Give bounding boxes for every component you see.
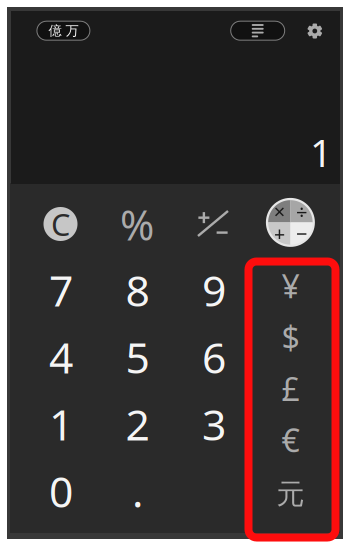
button[interactable]: £ [244,363,337,414]
staticText: ¥ [281,265,299,307]
button[interactable]: Clear [27,195,93,253]
button[interactable]: Operators [261,193,319,251]
staticText: 5 [125,329,149,385]
staticText: % [120,197,154,252]
staticText: 0 [49,463,73,519]
button[interactable]: 8 [99,256,176,323]
button[interactable]: € [244,414,337,465]
staticText: 1 [310,126,332,178]
staticText: ÷ [296,198,307,225]
staticText: × [274,198,285,225]
button[interactable]: 6 [176,323,252,390]
staticText: $ [281,316,299,358]
staticText: 6 [202,329,226,385]
staticText: € [281,419,299,461]
button[interactable]: Percent [104,195,170,253]
staticText: 1 [49,396,73,452]
staticText: 7 [49,262,73,318]
staticText: £ [281,367,299,410]
staticText: 9 [202,262,226,318]
staticText: 元 [276,477,304,511]
button[interactable]: 元 [244,465,337,517]
button[interactable]: 億 万 [37,21,90,40]
button[interactable]: 1 [23,390,99,457]
button[interactable]: 0 [23,457,99,524]
staticText: 8 [125,262,149,318]
button[interactable]: Tape [231,21,285,40]
button[interactable]: 4 [23,323,99,390]
button[interactable] [176,457,252,524]
button[interactable]: Settings [301,17,329,45]
staticText: . [132,463,143,519]
staticText: + [274,220,285,247]
button[interactable]: 9 [176,256,252,323]
button[interactable]: $ [244,312,337,363]
button[interactable]: ¥ [244,260,337,311]
button[interactable]: 2 [99,390,176,457]
staticText: 億 万 [48,22,78,39]
button[interactable]: 7 [23,256,99,323]
button[interactable]: Toggle sign [180,194,246,252]
button[interactable]: 3 [176,390,252,457]
button[interactable]: . [99,457,176,524]
staticText: 2 [125,396,149,452]
staticText: − [296,220,307,247]
staticText: 3 [202,396,226,452]
button[interactable]: 5 [99,323,176,390]
staticText: 4 [49,329,73,385]
staticText: C [51,204,70,244]
